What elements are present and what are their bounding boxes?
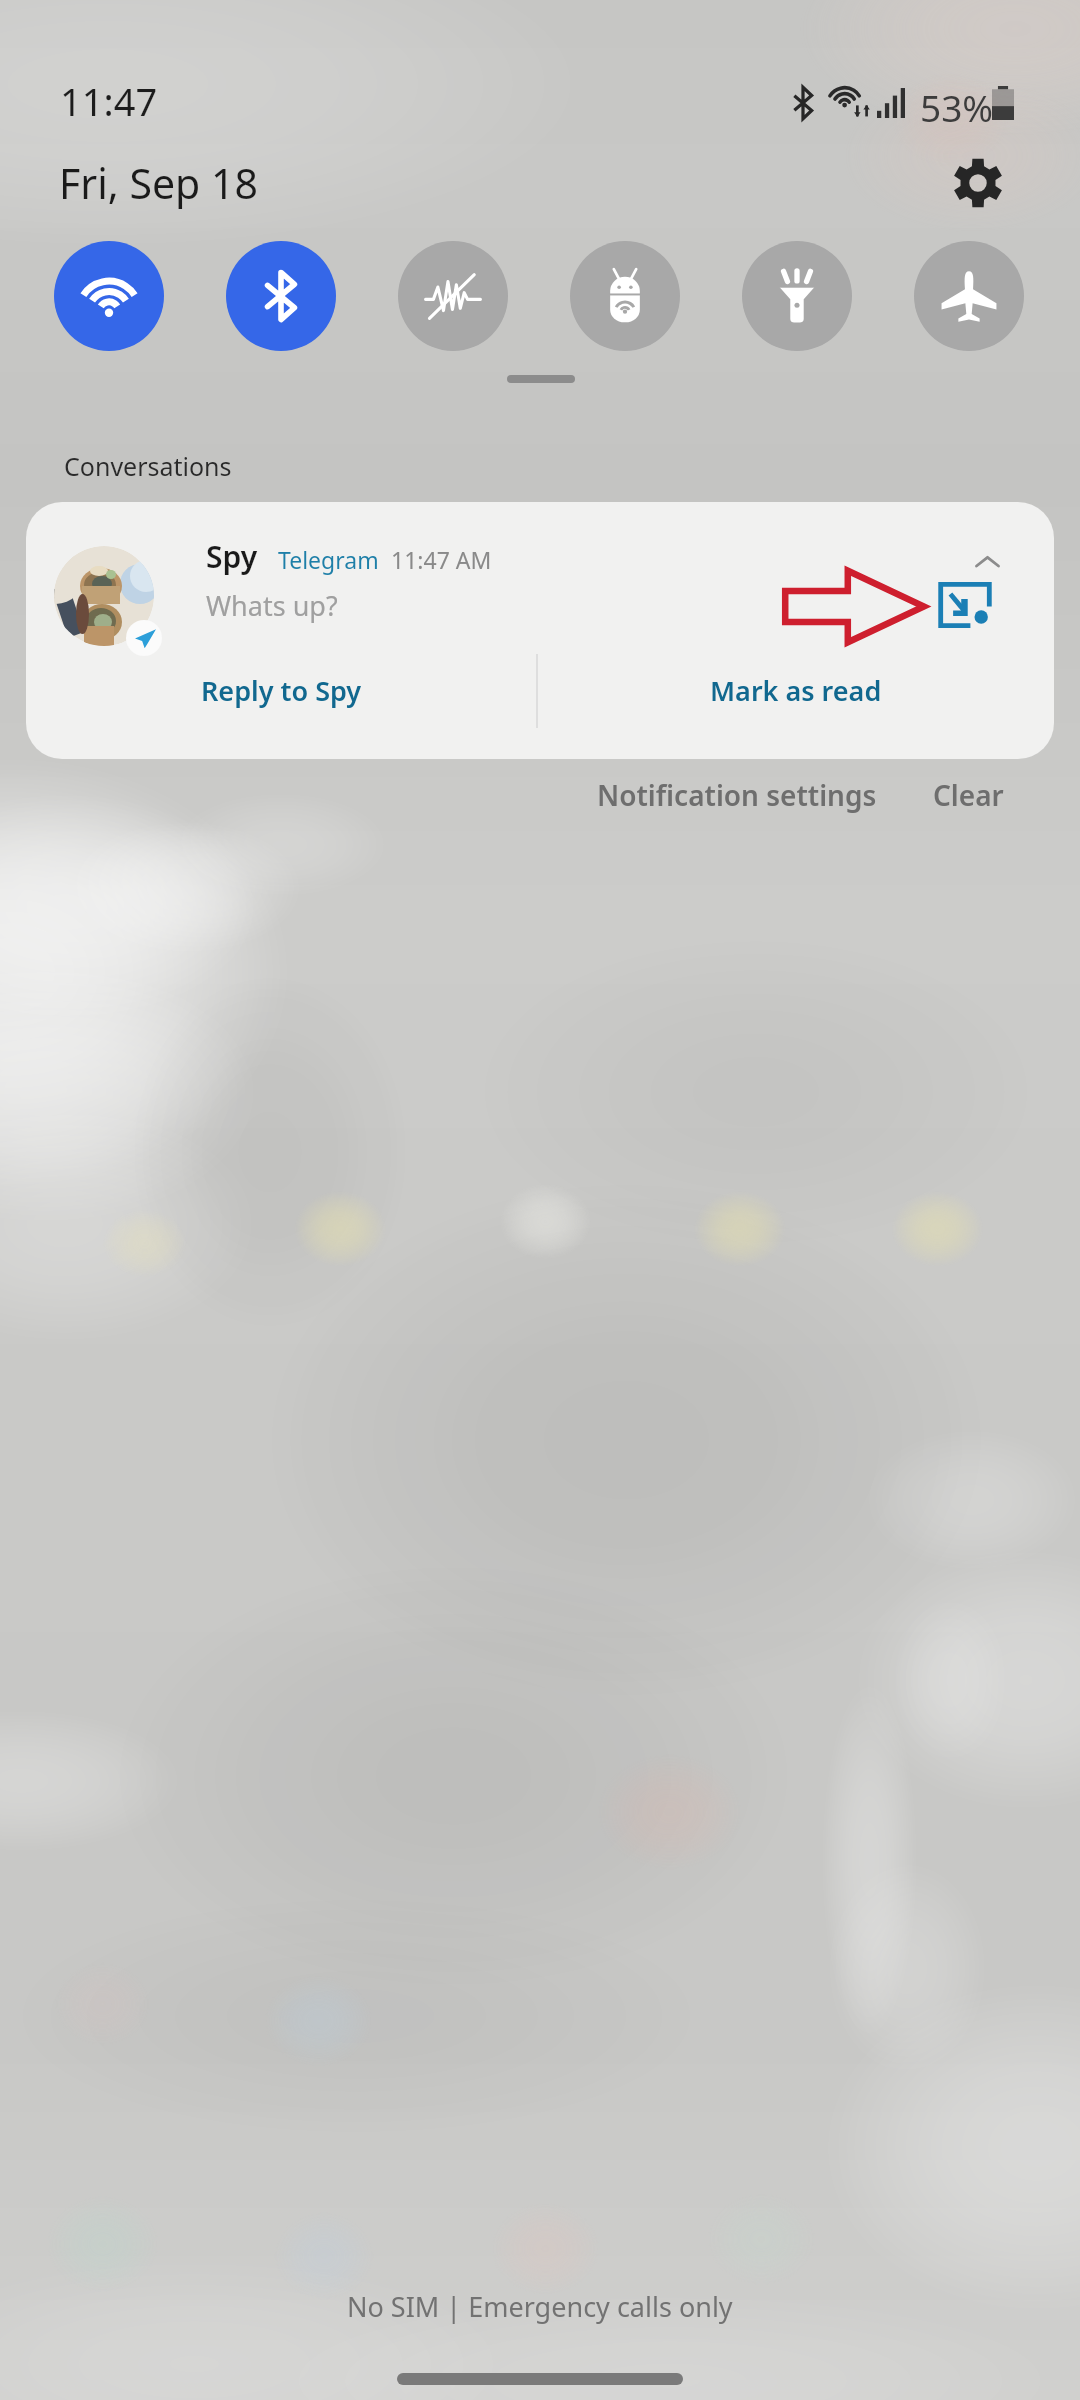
button[interactable]: Airplane mode (914, 241, 1024, 351)
staticText: Whats up? (206, 587, 338, 624)
button[interactable]: Reply to Spy (26, 636, 536, 745)
button[interactable]: Settings (941, 148, 1013, 220)
button[interactable]: Mark as read (538, 636, 1054, 745)
staticText: Notification settings (597, 776, 877, 814)
staticText: 11:47 AM (391, 544, 492, 575)
button[interactable]: Wi-Fi (54, 241, 164, 351)
staticText: Fri, Sep 18 (59, 155, 258, 211)
button[interactable]: Clear (917, 762, 1020, 828)
button[interactable]: Notification settings (581, 762, 893, 828)
staticText: 11:47 (60, 75, 158, 127)
staticText: Clear (933, 776, 1004, 814)
button[interactable]: Spy (26, 502, 1054, 759)
button[interactable]: Open bubble (928, 572, 1002, 638)
button[interactable]: Bluetooth (226, 241, 336, 351)
button[interactable]: Android Auto (570, 241, 680, 351)
staticText: Conversations (64, 449, 232, 483)
button[interactable]: Flashlight (742, 241, 852, 351)
staticText: Spy (206, 536, 258, 577)
button[interactable]: Sound (398, 241, 508, 351)
staticText: Telegram (278, 544, 379, 575)
staticText: Reply to Spy (201, 672, 362, 709)
staticText: 53% (920, 82, 994, 132)
staticText: No SIM | Emergency calls only (347, 2288, 733, 2325)
staticText: Mark as read (710, 672, 882, 709)
